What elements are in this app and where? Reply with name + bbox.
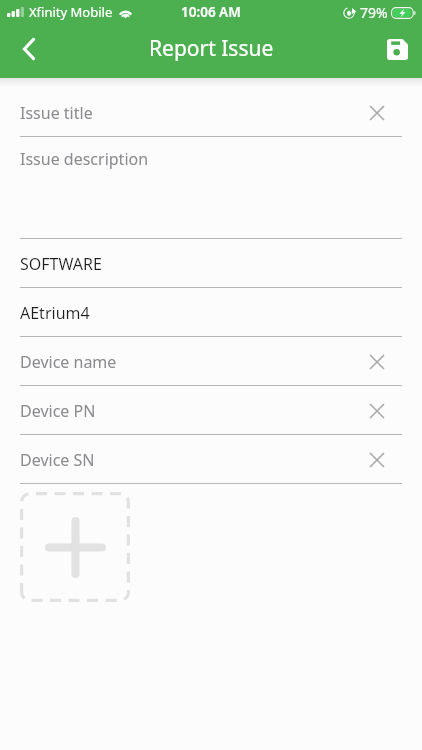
- button[interactable]: Issue title: [20, 89, 402, 137]
- button[interactable]: Device SN: [20, 435, 402, 484]
- staticText: Device name: [20, 351, 370, 373]
- staticText: Issue title: [20, 102, 370, 124]
- staticText: Issue description: [20, 148, 402, 170]
- button[interactable]: Device name: [20, 337, 402, 386]
- button[interactable]: Add photo: [20, 492, 130, 602]
- button[interactable]: Clear Device SN: [370, 448, 402, 472]
- button[interactable]: Save: [372, 24, 422, 78]
- staticText: Device PN: [20, 400, 370, 422]
- staticText: Report Issue: [149, 34, 274, 63]
- button[interactable]: SOFTWARE: [20, 239, 402, 288]
- button[interactable]: Back: [0, 24, 58, 78]
- staticText: Device SN: [20, 449, 370, 471]
- button[interactable]: Clear Device PN: [370, 399, 402, 423]
- button[interactable]: Clear Issue title: [370, 101, 402, 125]
- staticText: AEtrium4: [20, 302, 402, 324]
- button[interactable]: Clear Device name: [370, 350, 402, 374]
- button[interactable]: Device PN: [20, 386, 402, 435]
- button[interactable]: Issue description: [20, 137, 402, 239]
- button[interactable]: AEtrium4: [20, 288, 402, 337]
- staticText: SOFTWARE: [20, 253, 402, 275]
- staticText: Xfinity Mobile: [29, 3, 113, 21]
- staticText: 10:06 AM: [181, 3, 241, 21]
- staticText: 79%: [360, 3, 388, 22]
